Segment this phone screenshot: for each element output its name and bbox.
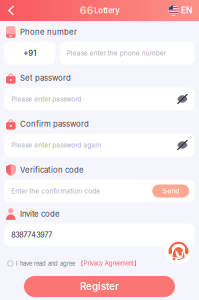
button[interactable]: Send verification code [152,184,189,197]
button[interactable]: Customer service [165,237,192,264]
button[interactable]: Language: English [168,0,199,21]
button[interactable]: Country code +91 [4,41,55,64]
staticText: Invite code [20,209,60,219]
staticText: EN [181,5,192,16]
button[interactable]: Show password [177,93,188,104]
staticText: Confirm password [20,119,89,129]
button[interactable]: Back [0,0,22,21]
staticText: Set password [20,73,71,83]
staticText: 【Privacy Agreement】 [78,260,140,267]
staticText: Phone number [20,27,77,37]
staticText: 66 [80,4,94,17]
button[interactable]: Show password [177,139,188,150]
staticText: Verification code [20,165,84,175]
staticText: Enter the confirmation code [11,187,100,195]
staticText: Send [162,187,179,195]
staticText: I have read and agree [16,260,75,267]
staticText: Please enter password again [11,141,101,149]
button[interactable]: Register [24,276,175,297]
staticText: Lottery [94,6,119,15]
staticText: 8387743977 [11,231,52,239]
staticText: Please enter the phone number [67,49,166,57]
staticText: Please enter password [11,95,81,103]
button[interactable]: I have read and agree [0,257,140,270]
staticText: +91 [23,48,36,58]
staticText: Register [80,280,119,292]
